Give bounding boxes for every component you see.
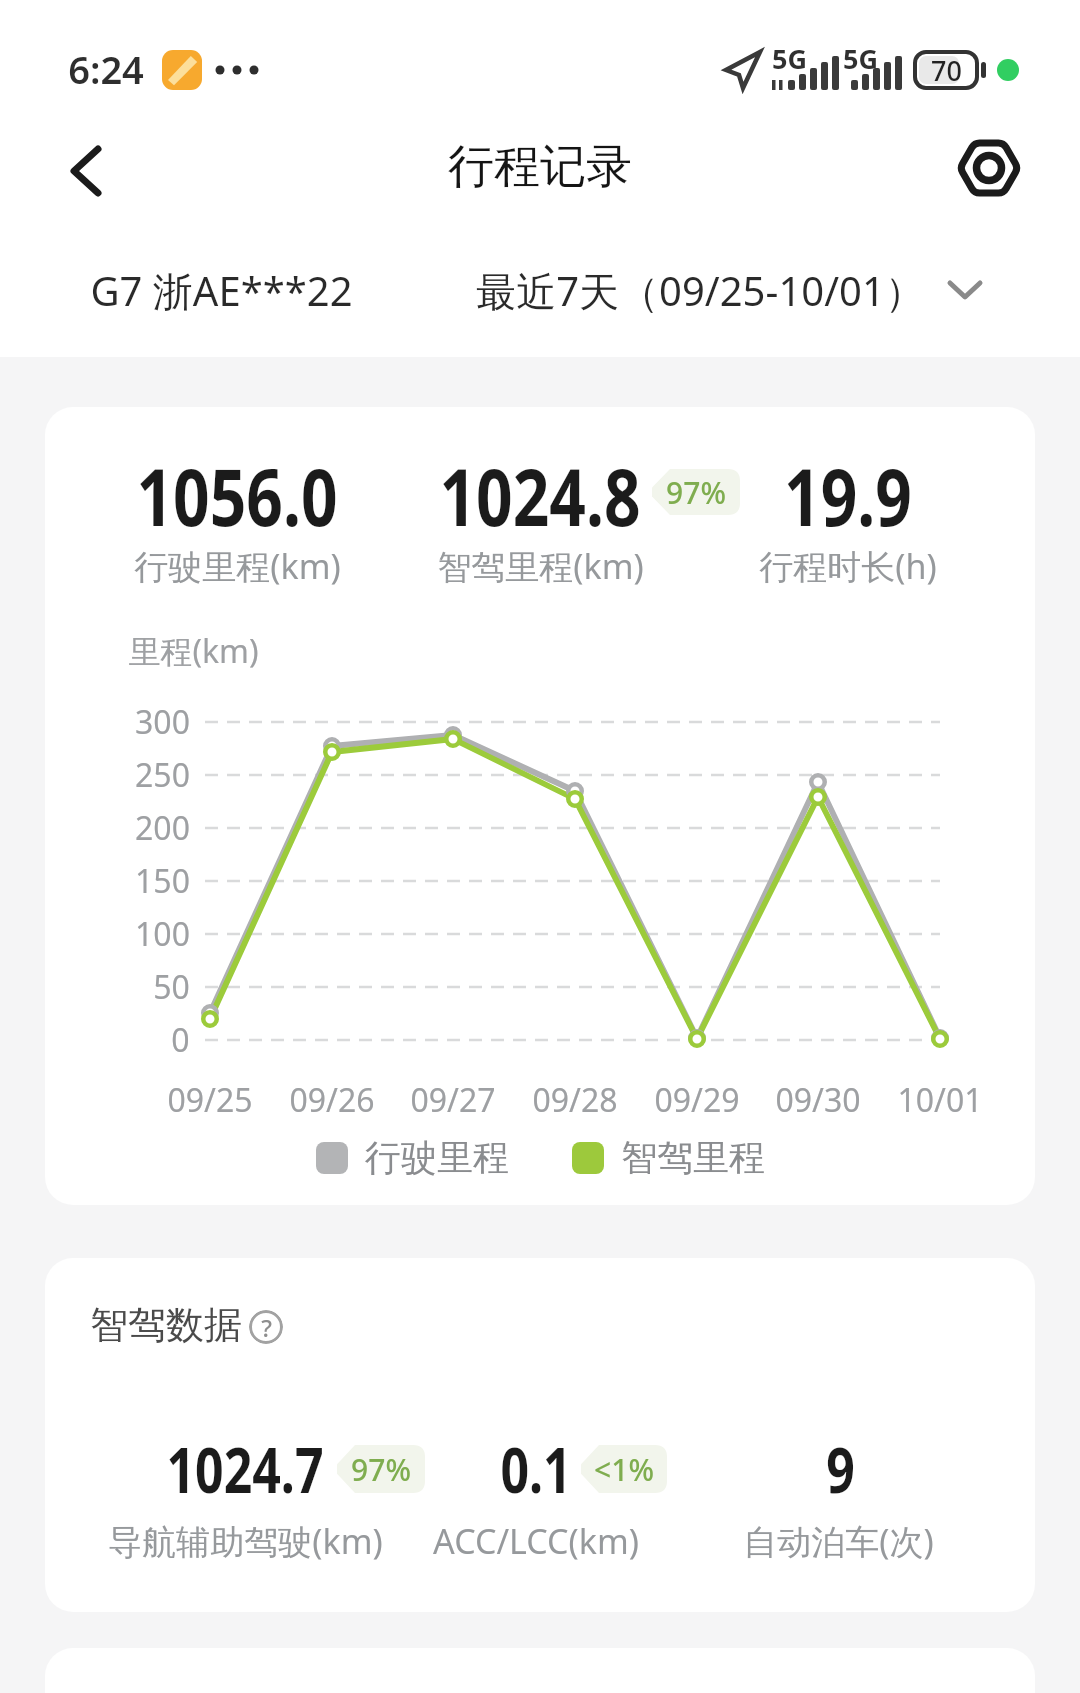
staticText: 150 — [135, 859, 190, 903]
staticText: ACC/LCC(km) — [433, 1518, 639, 1564]
button[interactable]: 最近7天（09/25-10/01） — [400, 250, 1000, 330]
staticText: 10/01 — [897, 1078, 983, 1122]
staticText: ? — [261, 1311, 272, 1344]
button[interactable] — [946, 125, 1032, 211]
staticText: 50 — [153, 965, 190, 1009]
staticText: 智驾里程(km) — [437, 543, 644, 589]
staticText: 0.1 — [500, 1426, 572, 1511]
staticText: <1% — [594, 1449, 654, 1490]
staticText: 行驶里程(km) — [134, 543, 341, 589]
staticText: 97% — [666, 472, 726, 513]
button[interactable] — [56, 132, 120, 196]
staticText: 行驶里程 — [365, 1135, 509, 1180]
staticText: 19.9 — [784, 443, 912, 549]
staticText: 导航辅助驾驶(km) — [108, 1518, 383, 1564]
staticText: 6:24 — [68, 43, 144, 95]
staticText: 1024.8 — [439, 443, 641, 549]
staticText: 09/28 — [532, 1078, 618, 1122]
staticText: 300 — [135, 700, 190, 744]
staticText: 100 — [135, 912, 190, 956]
staticText: 09/26 — [289, 1078, 375, 1122]
staticText: 09/25 — [167, 1078, 253, 1122]
staticText: 行程时长(h) — [759, 543, 937, 589]
staticText: 1056.0 — [136, 443, 338, 549]
staticText: 智驾数据 — [90, 1301, 242, 1349]
staticText: 5G — [843, 40, 878, 77]
staticText: 自动泊车(次) — [743, 1518, 934, 1564]
staticText: 5G — [772, 40, 807, 77]
staticText: 里程(km) — [128, 629, 259, 673]
staticText: 1024.7 — [166, 1426, 324, 1511]
staticText: 200 — [135, 806, 190, 850]
button[interactable]: ? — [249, 1310, 283, 1344]
button[interactable]: G7 浙AE***22 — [60, 250, 353, 330]
staticText: 70 — [931, 52, 962, 89]
staticText: 09/30 — [775, 1078, 861, 1122]
staticText: 09/29 — [654, 1078, 740, 1122]
staticText: G7 浙AE***22 — [90, 263, 353, 318]
staticText: 行程记录 — [448, 138, 632, 196]
staticText: 09/27 — [410, 1078, 496, 1122]
staticText: 250 — [135, 753, 190, 797]
staticText: 9 — [826, 1426, 855, 1511]
staticText: 最近7天（09/25-10/01） — [476, 263, 925, 318]
staticText: 97% — [351, 1449, 411, 1490]
staticText: 0 — [171, 1018, 190, 1062]
staticText: 智驾里程 — [621, 1135, 765, 1180]
